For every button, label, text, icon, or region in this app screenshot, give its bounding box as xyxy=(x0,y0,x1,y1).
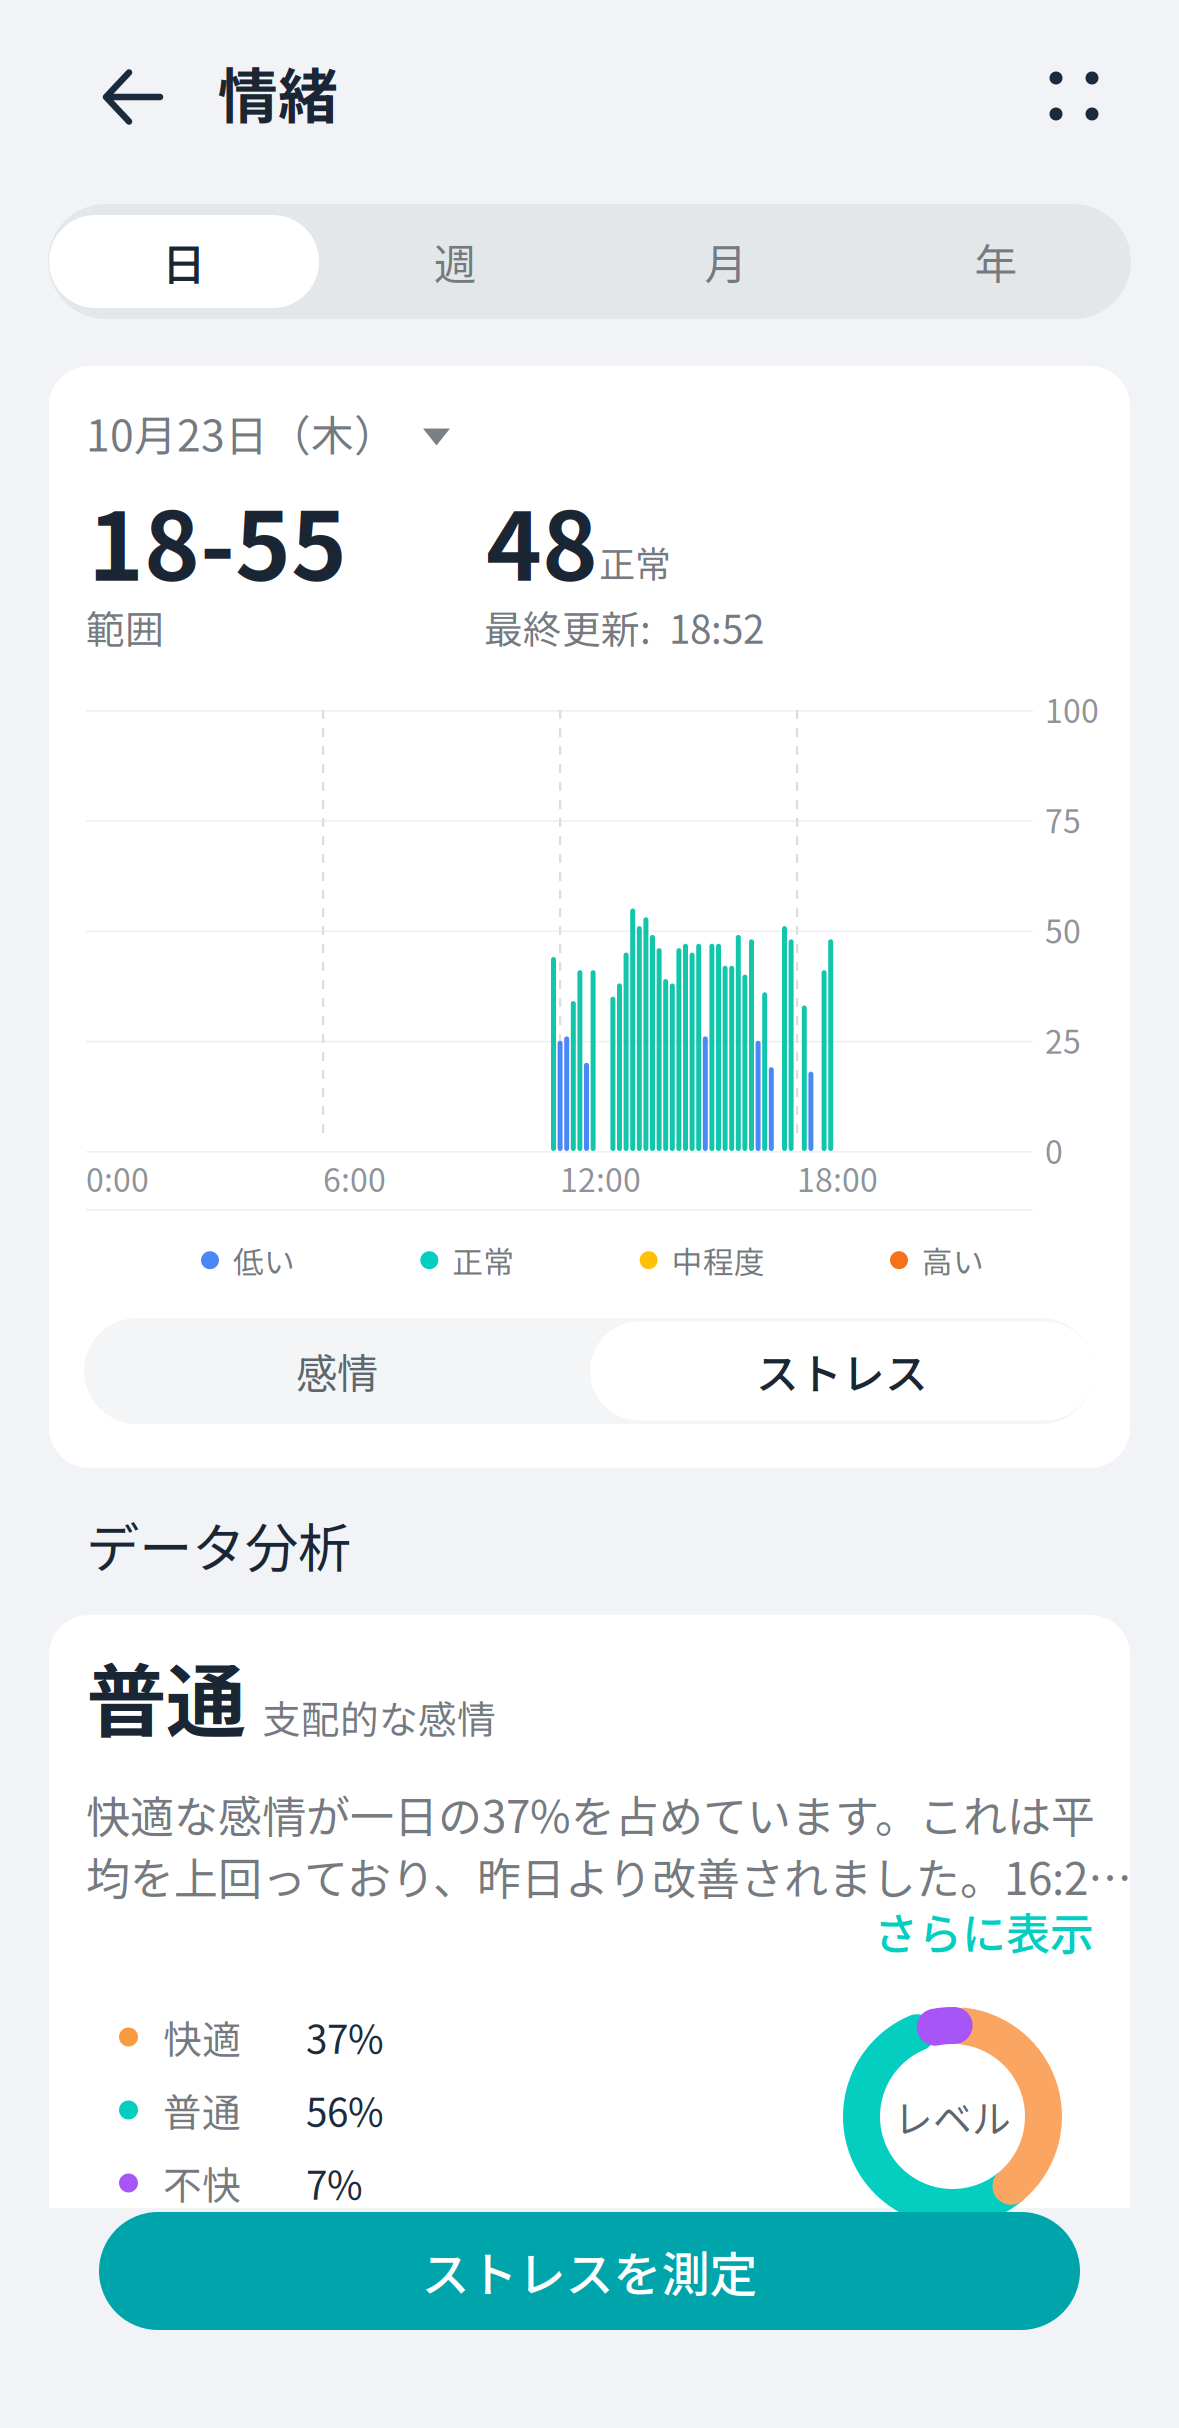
staticText: 56% xyxy=(306,2082,384,2138)
button[interactable]: 年 xyxy=(861,204,1131,319)
staticText: ストレスを測定 xyxy=(421,2236,757,2306)
staticText: 支配的な感情 xyxy=(262,1689,496,1745)
staticText: レベル xyxy=(894,2088,1011,2144)
staticText: 均を上回っており、昨日より改善されました。16:2… xyxy=(86,1844,1132,1908)
staticText: ストレス xyxy=(756,1340,928,1402)
staticText: 12:00 xyxy=(560,1155,641,1201)
button[interactable]: ストレスを測定 xyxy=(99,2212,1080,2330)
button[interactable]: 感情 xyxy=(84,1318,590,1424)
staticText: 75 xyxy=(1045,796,1081,842)
staticText: 中程度 xyxy=(672,1238,765,1282)
staticText: 48 xyxy=(486,471,598,608)
staticText: 10月23日（木） xyxy=(86,402,397,464)
button[interactable]: 月 xyxy=(591,204,861,319)
staticText: 快適 xyxy=(163,2009,241,2065)
staticText: 普通 xyxy=(163,2082,241,2138)
staticText: 高い xyxy=(922,1238,984,1282)
staticText: 年 xyxy=(974,231,1017,292)
staticText: 不快 xyxy=(163,2155,241,2211)
button[interactable]: Change date xyxy=(86,406,450,460)
staticText: 正常 xyxy=(452,1238,514,1282)
staticText: 100 xyxy=(1045,686,1099,732)
staticText: 7% xyxy=(306,2155,363,2211)
button[interactable]: Back xyxy=(57,43,163,151)
staticText: 週 xyxy=(434,231,477,292)
button[interactable]: ストレス xyxy=(590,1318,1094,1424)
staticText: 37% xyxy=(306,2009,384,2065)
staticText: 25 xyxy=(1045,1017,1081,1063)
button[interactable]: 週 xyxy=(320,204,591,319)
button[interactable]: さらに表示 xyxy=(86,1903,1094,1959)
staticText: 快適な感情が一日の37%を占めています。これは平 xyxy=(86,1782,1095,1846)
button[interactable]: More options xyxy=(1024,47,1124,145)
staticText: データ分析 xyxy=(86,1506,351,1583)
staticText: 情緒 xyxy=(218,49,338,136)
staticText: 感情 xyxy=(296,1341,378,1401)
staticText: 50 xyxy=(1045,906,1081,953)
staticText: 6:00 xyxy=(323,1155,386,1201)
staticText: 最終更新: 18:52 xyxy=(484,599,764,655)
staticText: 18-55 xyxy=(88,471,347,608)
button[interactable]: 日 xyxy=(48,204,320,319)
staticText: 範囲 xyxy=(86,599,164,655)
staticText: 低い xyxy=(233,1238,295,1282)
staticText: 0 xyxy=(1045,1127,1063,1173)
staticText: 正常 xyxy=(599,536,671,588)
staticText: 月 xyxy=(704,231,747,292)
staticText: 18:00 xyxy=(797,1155,878,1201)
staticText: さらに表示 xyxy=(874,1899,1094,1963)
staticText: 普通 xyxy=(86,1638,246,1754)
staticText: 日 xyxy=(162,230,206,293)
staticText: 0:00 xyxy=(86,1155,149,1201)
